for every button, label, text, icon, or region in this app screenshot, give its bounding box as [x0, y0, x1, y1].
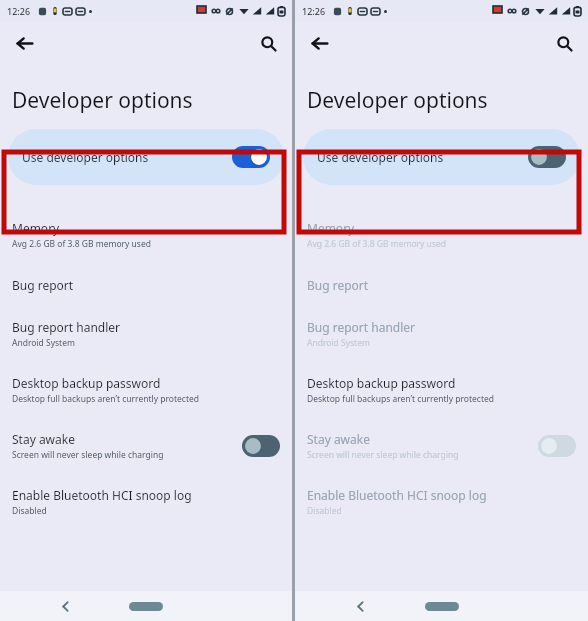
- button[interactable]: Home: [129, 602, 163, 611]
- button[interactable]: Back: [305, 29, 333, 57]
- button[interactable]: Home: [425, 602, 459, 611]
- staticText: Disabled: [12, 505, 47, 517]
- staticText: Use developer options: [22, 149, 232, 165]
- staticText: Screen will never sleep while charging: [12, 449, 164, 461]
- button[interactable]: Bug report handler: [0, 306, 292, 362]
- button[interactable]: Use developer options: [8, 129, 284, 185]
- button[interactable]: Enable Bluetooth HCI snoop log: [0, 474, 292, 530]
- staticText: Bug report handler: [12, 319, 121, 335]
- button[interactable]: Stay awake: [295, 418, 588, 474]
- staticText: Stay awake: [12, 431, 75, 447]
- button[interactable]: Desktop backup password: [295, 362, 588, 418]
- button[interactable]: Bug report handler: [295, 306, 588, 362]
- staticText: Use developer options: [317, 149, 528, 165]
- button[interactable]: Toggle: [528, 146, 566, 168]
- staticText: Enable Bluetooth HCI snoop log: [307, 487, 487, 503]
- button[interactable]: Use developer options: [303, 129, 580, 185]
- button[interactable]: Memory: [0, 207, 292, 263]
- button[interactable]: Search: [550, 29, 578, 57]
- staticText: Bug report handler: [307, 319, 416, 335]
- button[interactable]: Toggle: [538, 435, 576, 457]
- staticText: Android System: [12, 337, 75, 349]
- staticText: Memory: [12, 220, 60, 236]
- staticText: Developer options: [307, 86, 488, 115]
- staticText: Android System: [307, 337, 370, 349]
- button[interactable]: Stay awake: [0, 418, 292, 474]
- button[interactable]: Bug report: [295, 263, 588, 306]
- button[interactable]: Desktop backup password: [0, 362, 292, 418]
- button[interactable]: Back: [10, 29, 38, 57]
- staticText: Enable Bluetooth HCI snoop log: [12, 487, 192, 503]
- staticText: Avg 2.6 GB of 3.8 GB memory used: [12, 238, 151, 250]
- staticText: Memory: [307, 220, 355, 236]
- button[interactable]: Toggle: [232, 146, 270, 168]
- button[interactable]: Toggle: [242, 435, 280, 457]
- staticText: Desktop full backups aren’t currently pr…: [12, 393, 200, 405]
- staticText: Developer options: [12, 86, 193, 115]
- staticText: Screen will never sleep while charging: [307, 449, 459, 461]
- staticText: Avg 2.6 GB of 3.8 GB memory used: [307, 238, 446, 250]
- staticText: 12:26: [302, 5, 326, 17]
- button[interactable]: Memory: [295, 207, 588, 263]
- button[interactable]: Search: [254, 29, 282, 57]
- button[interactable]: Back: [55, 596, 75, 616]
- staticText: Bug report: [12, 277, 74, 293]
- button[interactable]: Bug report: [0, 263, 292, 306]
- staticText: Desktop backup password: [12, 375, 161, 391]
- button[interactable]: Enable Bluetooth HCI snoop log: [295, 474, 588, 530]
- staticText: Desktop backup password: [307, 375, 456, 391]
- staticText: Stay awake: [307, 431, 370, 447]
- staticText: Bug report: [307, 277, 369, 293]
- staticText: 12:26: [7, 5, 31, 17]
- button[interactable]: Back: [350, 596, 370, 616]
- staticText: Desktop full backups aren’t currently pr…: [307, 393, 495, 405]
- staticText: Disabled: [307, 505, 342, 517]
